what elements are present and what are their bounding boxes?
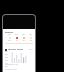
staticText: Security Status <box>8 48 23 51</box>
staticText: 128 <box>8 40 11 42</box>
staticText: 20 <box>30 40 32 42</box>
staticText: item <box>5 54 8 56</box>
staticText: Risk <box>15 34 18 36</box>
staticText: Total <box>8 34 12 36</box>
staticText: More <box>29 49 33 51</box>
staticText: item <box>5 60 8 62</box>
button[interactable]: New <box>27 34 34 42</box>
button[interactable]: Total <box>6 34 13 42</box>
staticText: All systems normal <box>5 69 17 71</box>
staticText: 96 <box>23 40 25 42</box>
staticText: New <box>29 34 32 36</box>
staticText: Report <box>5 30 14 33</box>
button[interactable]: Security Status <box>3 48 35 51</box>
staticText: item <box>5 66 8 68</box>
staticText: 12 <box>16 40 18 42</box>
staticText: item <box>5 63 8 65</box>
staticText: Safe <box>22 34 25 36</box>
button[interactable]: Risk <box>13 34 20 42</box>
staticText: item <box>5 51 8 53</box>
staticText: item <box>5 57 8 59</box>
staticText: Last scanned 2 h ago <box>5 64 18 66</box>
button[interactable]: Safe <box>20 34 27 42</box>
